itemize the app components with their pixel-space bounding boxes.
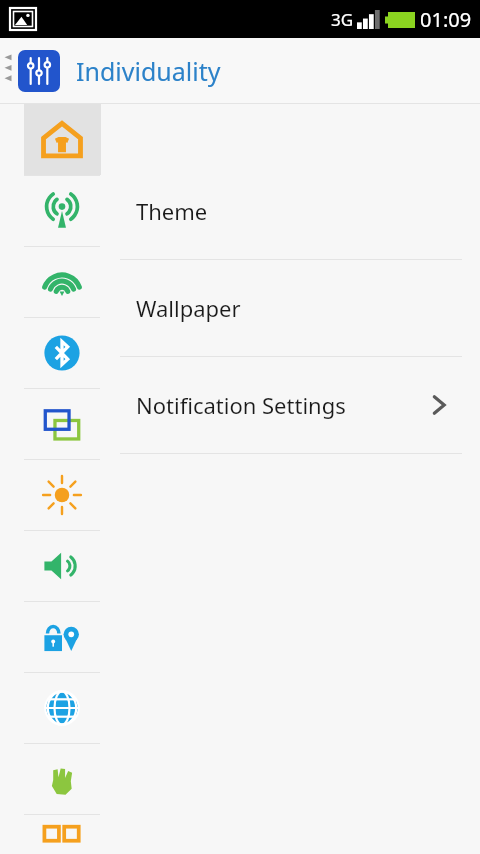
- staticText: Theme: [136, 196, 480, 226]
- other: Network: [40, 189, 84, 233]
- button[interactable]: Bluetooth: [0, 318, 110, 388]
- button[interactable]: Apps: [0, 815, 110, 854]
- staticText: Wallpaper: [136, 293, 480, 323]
- staticText: 3G: [331, 8, 354, 31]
- button[interactable]: Sound: [0, 531, 110, 601]
- other: Individuality: [18, 50, 60, 92]
- other: Theme: [40, 118, 84, 162]
- other: Bluetooth: [40, 331, 84, 375]
- button[interactable]: Network: [0, 176, 110, 246]
- staticText: 01:09: [420, 6, 472, 33]
- other: Windows: [40, 402, 84, 446]
- button[interactable]: Wallpaper: [110, 260, 480, 356]
- other: Security: [40, 615, 84, 659]
- other: Sound: [40, 544, 84, 588]
- button[interactable]: Theme: [110, 163, 480, 259]
- button[interactable]: Individuality: [18, 50, 221, 92]
- other: Gestures: [40, 757, 84, 801]
- other: Apps: [40, 815, 84, 854]
- button[interactable]: WiFi: [0, 247, 110, 317]
- button[interactable]: Theme: [0, 104, 110, 175]
- button[interactable]: Notification Settings: [110, 357, 480, 453]
- button[interactable]: Gestures: [0, 744, 110, 814]
- button[interactable]: Display: [0, 460, 110, 530]
- button[interactable]: Windows: [0, 389, 110, 459]
- staticText: Notification Settings: [136, 390, 454, 420]
- staticText: Individuality: [76, 54, 221, 88]
- button[interactable]: Language: [0, 673, 110, 743]
- button[interactable]: Security: [0, 602, 110, 672]
- other: WiFi: [40, 260, 84, 304]
- other: Language: [40, 686, 84, 730]
- other: Display: [40, 473, 84, 517]
